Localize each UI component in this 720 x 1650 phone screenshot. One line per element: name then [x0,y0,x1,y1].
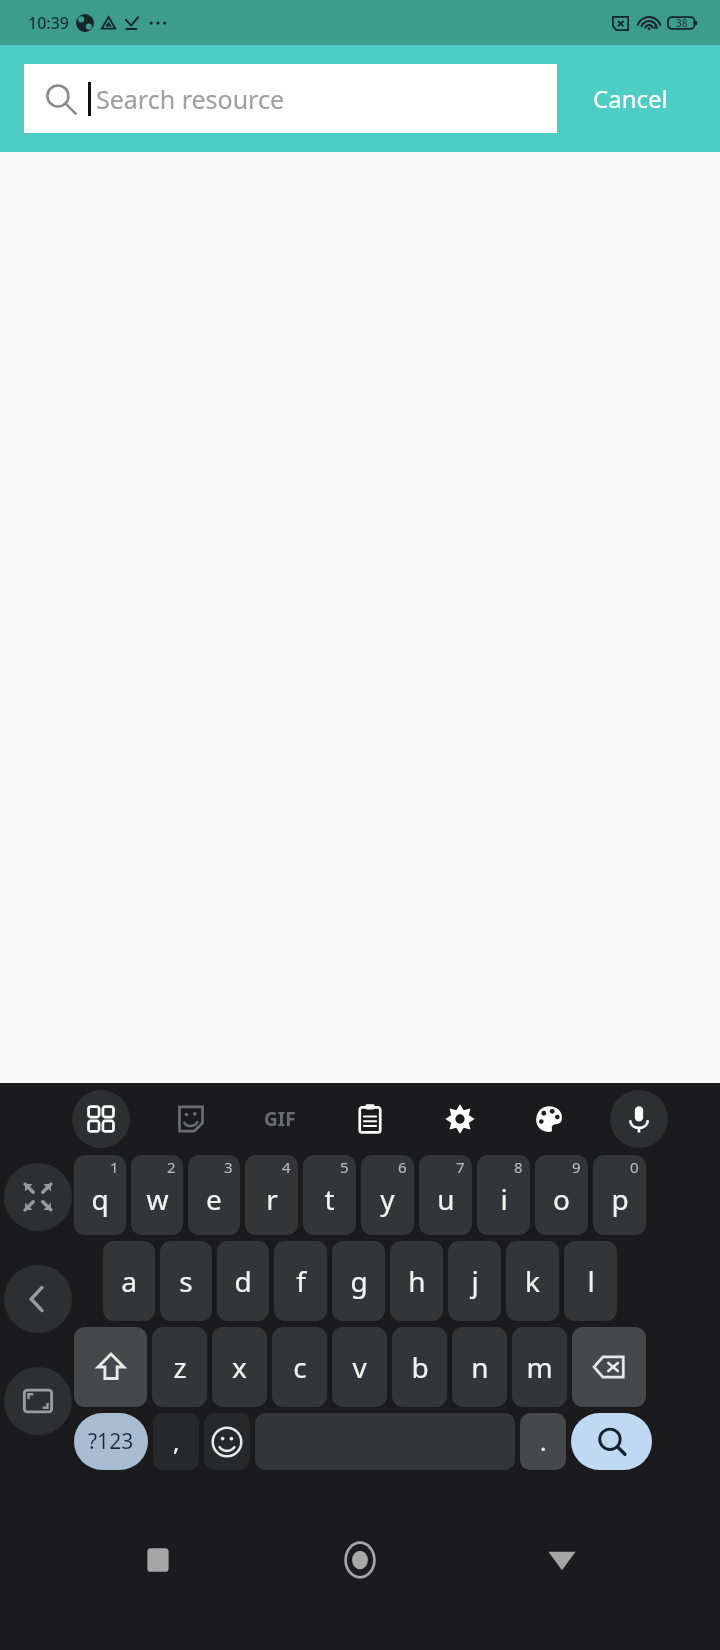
button[interactable]: 3 [188,1155,240,1235]
staticText: 7 [456,1157,465,1177]
staticText: v [352,1348,367,1386]
button[interactable]: z [152,1327,207,1407]
staticText: 38 [676,16,688,30]
button[interactable]: 8 [477,1155,530,1235]
button[interactable]: . [520,1413,566,1470]
button[interactable]: k [506,1241,559,1321]
button[interactable]: h [390,1241,443,1321]
button[interactable]: Recent apps [120,1522,196,1598]
staticText: x [232,1348,247,1386]
staticText: 6 [398,1157,407,1177]
button[interactable]: 4 [245,1155,298,1235]
button[interactable]: Backspace [572,1327,646,1407]
staticText: q [91,1180,109,1218]
button[interactable]: m [512,1327,567,1407]
staticText: 8 [514,1157,523,1177]
staticText: 2 [167,1157,176,1177]
staticText: j [471,1262,479,1300]
button[interactable]: s [160,1241,212,1321]
button[interactable]: 1 [74,1155,126,1235]
button[interactable]: Cancel [557,45,704,152]
staticText: h [408,1262,426,1300]
button[interactable]: d [217,1241,269,1321]
staticText: a [121,1262,137,1300]
button[interactable]: 7 [419,1155,472,1235]
staticText: i [500,1180,508,1218]
button[interactable]: g [332,1241,385,1321]
button[interactable]: Menu [72,1090,130,1148]
button[interactable]: x [212,1327,267,1407]
button[interactable]: b [392,1327,447,1407]
button[interactable]: Resize keyboard [4,1163,72,1231]
button[interactable]: n [452,1327,507,1407]
staticText: Cancel [593,82,668,115]
staticText: . [540,1425,547,1458]
button[interactable]: l [564,1241,617,1321]
button[interactable]: Settings [431,1090,489,1148]
button[interactable]: Shift [74,1327,147,1407]
staticText: u [437,1180,455,1218]
button[interactable]: c [272,1327,327,1407]
button[interactable]: v [332,1327,387,1407]
button[interactable]: 0 [593,1155,646,1235]
staticText: z [173,1348,187,1386]
button[interactable]: Search [571,1413,652,1470]
staticText: n [471,1348,489,1386]
button[interactable]: Voice input [610,1090,668,1148]
button[interactable]: Emoji [204,1413,250,1470]
button[interactable]: Back [524,1522,600,1598]
staticText: 10:39 [28,12,69,34]
staticText: f [296,1262,306,1300]
button[interactable]: Stickers [162,1090,220,1148]
button[interactable]: , [153,1413,199,1470]
staticText: g [350,1262,368,1300]
button[interactable]: Theme [520,1090,578,1148]
staticText: 0 [630,1157,639,1177]
staticText: m [526,1348,553,1386]
staticText: w [146,1180,169,1218]
button[interactable]: ?123 [74,1413,148,1470]
button[interactable]: 6 [361,1155,414,1235]
staticText: 5 [340,1157,349,1177]
staticText: b [411,1348,429,1386]
button[interactable]: f [274,1241,327,1321]
button[interactable]: j [448,1241,501,1321]
staticText: k [525,1262,540,1300]
button[interactable]: Back [4,1265,72,1333]
staticText: d [234,1262,252,1300]
staticText: l [587,1262,595,1300]
button[interactable]: Search resource [24,64,557,133]
staticText: o [553,1180,570,1218]
staticText: 9 [572,1157,581,1177]
staticText: , [173,1425,180,1458]
staticText: GIF [264,1106,296,1132]
button[interactable]: a [103,1241,155,1321]
staticText: s [179,1262,193,1300]
button[interactable]: Home [322,1522,398,1598]
button[interactable]: Clipboard [341,1090,399,1148]
button[interactable]: Floating keyboard [4,1367,72,1435]
staticText: r [266,1180,278,1218]
button[interactable]: 9 [535,1155,588,1235]
staticText: y [380,1180,395,1218]
staticText: t [324,1180,335,1218]
staticText: 4 [282,1157,291,1177]
staticText: 1 [110,1157,119,1177]
button[interactable]: 5 [303,1155,356,1235]
button[interactable]: GIF [251,1090,309,1148]
staticText: e [206,1180,222,1218]
button[interactable]: 2 [131,1155,183,1235]
staticText: c [293,1348,307,1386]
staticText: 3 [224,1157,233,1177]
staticText: ?123 [88,1427,134,1456]
staticText: Search resource [96,82,285,116]
staticText: p [611,1180,629,1218]
